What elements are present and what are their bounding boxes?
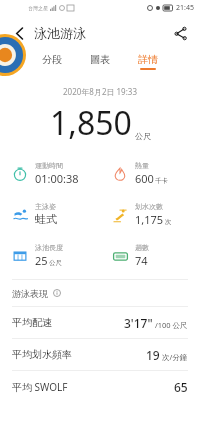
button[interactable]: 分段	[38, 51, 66, 72]
button[interactable]: Back	[8, 21, 32, 45]
staticText: 詳情	[138, 53, 158, 66]
staticText: 運動時間	[35, 161, 63, 170]
staticText: 千卡	[155, 177, 168, 185]
staticText: 21:45	[176, 3, 194, 13]
staticText: 划水次數	[135, 202, 163, 211]
staticText: 趟數	[135, 243, 149, 252]
staticText: 平均配速	[12, 316, 124, 329]
button[interactable]: Share	[168, 21, 192, 45]
staticText: 分段	[42, 53, 62, 66]
staticText: 次	[165, 218, 172, 226]
staticText: 1,175	[135, 212, 164, 227]
staticText: 2020年8月2日 19:33	[63, 86, 137, 97]
staticText: 圖表	[90, 53, 110, 66]
staticText: 25	[35, 253, 48, 268]
staticText: 600	[135, 171, 154, 186]
staticText: 3'17"	[124, 315, 153, 331]
staticText: 74	[135, 253, 148, 268]
staticText: 台灣之星	[28, 5, 48, 11]
staticText: 蛙式	[35, 212, 57, 226]
staticText: 熱量	[135, 161, 149, 170]
button[interactable]: 平均划水頻率	[0, 339, 200, 370]
staticText: 泳池長度	[35, 243, 63, 252]
staticText: 1,850	[50, 101, 132, 145]
staticText: 公尺	[49, 259, 62, 267]
button[interactable]: 詳情	[134, 51, 162, 72]
button[interactable]: 圖表	[86, 51, 114, 72]
staticText: 平均划水頻率	[12, 348, 146, 361]
staticText: 01:00:38	[35, 171, 79, 186]
staticText: 泳池游泳	[34, 25, 86, 41]
staticText: 19	[146, 347, 160, 363]
staticText: 公尺	[135, 131, 151, 141]
staticText: 游泳表現	[12, 288, 48, 299]
staticText: 65	[174, 379, 188, 395]
staticText: /100 公尺	[155, 320, 188, 330]
staticText: 主泳姿	[35, 202, 56, 211]
staticText: 平均 SWOLF	[12, 380, 174, 394]
button[interactable]: 平均 SWOLF	[0, 371, 200, 402]
staticText: 次/分鐘	[162, 352, 188, 362]
button[interactable]: Info	[51, 287, 63, 299]
button[interactable]: 平均配速	[0, 307, 200, 338]
